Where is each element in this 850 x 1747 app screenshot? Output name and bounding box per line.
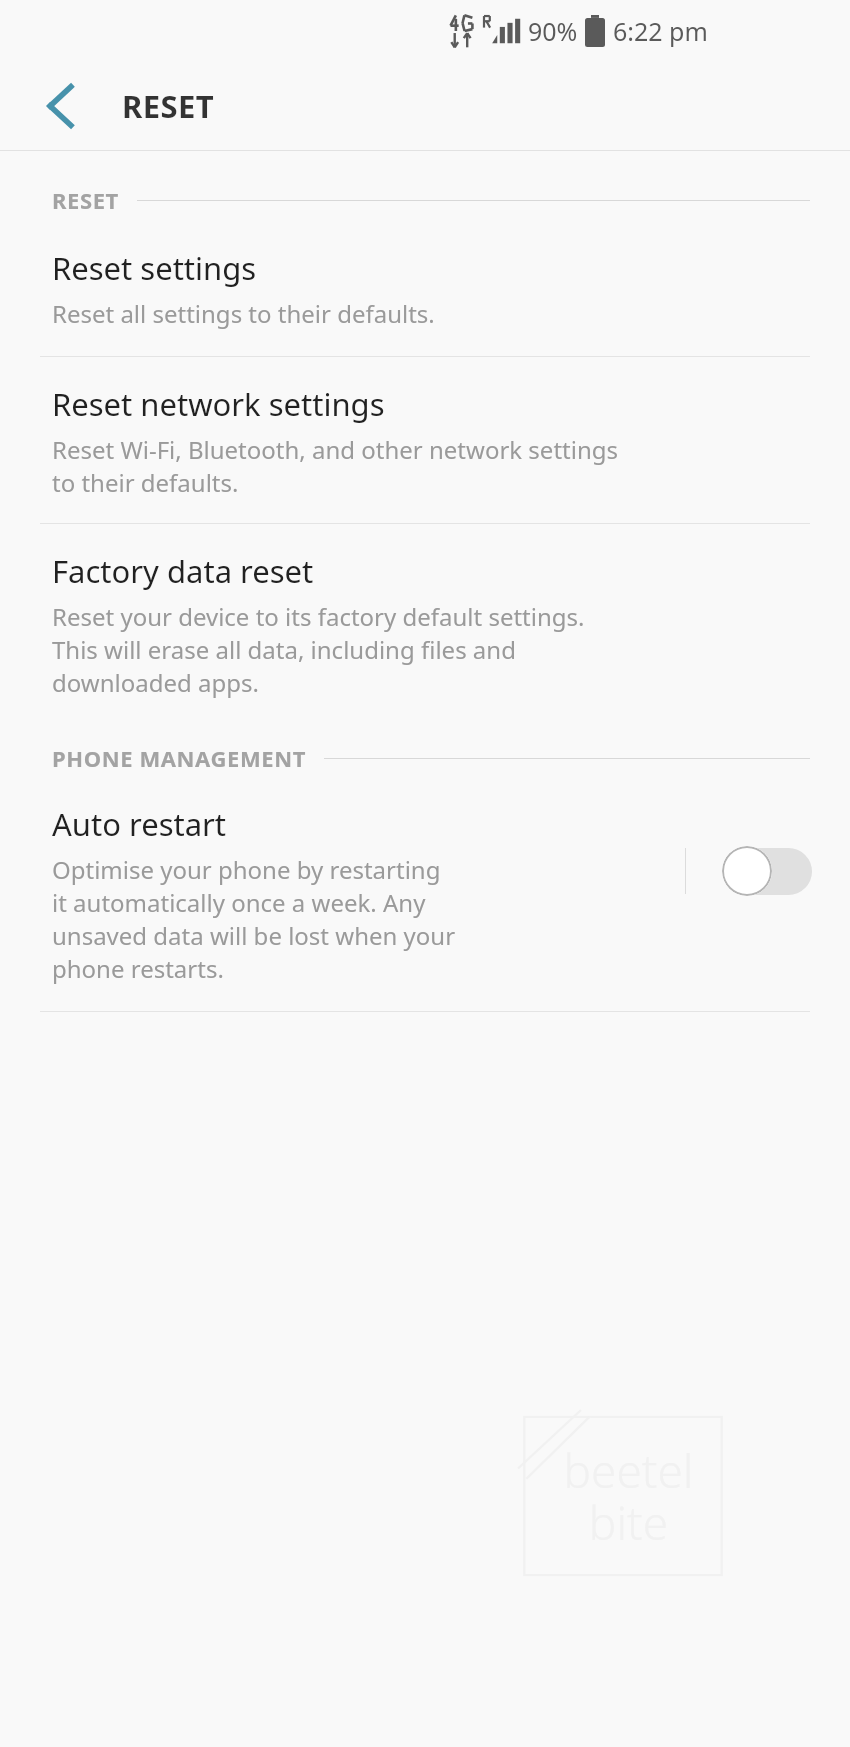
staticText: Optimise your phone by restarting it aut…: [52, 853, 456, 985]
button[interactable]: Reset network settings: [0, 383, 850, 499]
staticText: Reset all settings to their defaults.: [52, 297, 435, 330]
staticText: 90%: [528, 14, 578, 48]
staticText: Factory data reset: [52, 550, 314, 592]
button[interactable]: Reset settings: [0, 247, 850, 330]
button[interactable]: Auto restart: [0, 803, 850, 985]
staticText: RESET: [122, 85, 215, 127]
staticText: Reset your device to its factory default…: [52, 600, 585, 699]
button[interactable]: Auto restart toggle, off: [722, 845, 814, 897]
staticText: RESET: [52, 185, 119, 215]
button[interactable]: Back: [24, 70, 96, 142]
staticText: Auto restart: [52, 803, 227, 845]
staticText: Reset settings: [52, 247, 257, 289]
staticText: Reset Wi-Fi, Bluetooth, and other networ…: [52, 433, 619, 499]
staticText: PHONE MANAGEMENT: [52, 743, 306, 773]
staticText: 6:22 pm: [613, 14, 708, 48]
button[interactable]: Factory data reset: [0, 550, 850, 699]
staticText: Reset network settings: [52, 383, 385, 425]
